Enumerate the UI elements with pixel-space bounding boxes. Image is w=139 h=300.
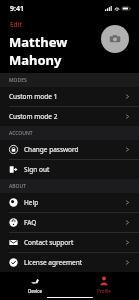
button[interactable]: Custom mode 1 [0,87,139,106]
button[interactable]: Custom mode 2 [0,107,139,126]
button[interactable]: License agreement [0,253,139,272]
staticText: Contact support [24,238,74,247]
button[interactable]: Sign out [0,160,139,179]
staticText: Custom mode 2 [9,112,58,121]
staticText: Matthew [9,33,68,51]
staticText: Sign out [24,165,50,174]
button[interactable]: Change profile photo [101,25,129,53]
staticText: FAQ [24,218,37,227]
staticText: Help [24,198,39,207]
staticText: Edit [10,20,22,29]
staticText: 9:41 [10,4,24,14]
button[interactable]: Profile [69,272,139,297]
staticText: ACCOUNT [9,130,33,137]
button[interactable]: Device [0,272,69,297]
button[interactable]: Change password [0,140,139,159]
staticText: ABOUT [9,183,26,190]
staticText: Profile [97,288,111,294]
staticText: Device [28,288,42,294]
staticText: Custom mode 1 [9,92,58,101]
button[interactable]: Contact support [0,233,139,252]
staticText: Change password [24,145,79,154]
staticText: MODES [9,77,27,84]
staticText: Mahony [9,51,62,69]
staticText: License agreement [24,258,82,267]
button[interactable]: FAQ [0,213,139,232]
button[interactable]: Help [0,193,139,212]
button[interactable]: Edit [9,19,23,30]
